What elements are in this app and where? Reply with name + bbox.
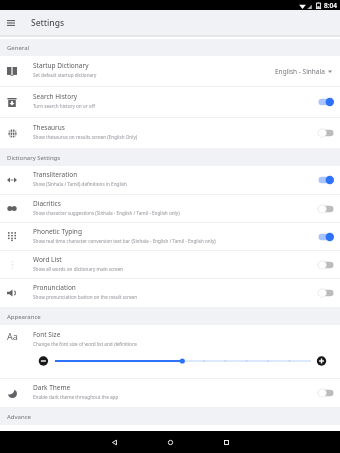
staticText: Advance <box>7 413 31 421</box>
staticText: Show thesaurus on results screen (Englis… <box>33 134 138 140</box>
button[interactable]: Thesaurus <box>0 118 340 148</box>
staticText: Word List <box>33 255 62 264</box>
button[interactable]: Switch off <box>316 258 340 272</box>
button[interactable]: Switch on <box>316 95 340 109</box>
staticText: Set default startup dictionary <box>33 72 97 78</box>
staticText: Dictionary Settings <box>7 154 61 162</box>
staticText: Change the font size of word list and de… <box>33 341 137 347</box>
staticText: Show all words on dictionary main screen <box>33 266 124 272</box>
staticText: Search History <box>33 92 78 101</box>
button[interactable]: Switch off <box>316 202 340 216</box>
button[interactable]: Diacritics <box>0 195 340 222</box>
button[interactable]: Open navigation drawer <box>0 10 22 35</box>
staticText: Thesaurus <box>33 123 65 132</box>
button[interactable]: Transliteration <box>0 166 340 194</box>
button[interactable]: Switch off <box>316 386 340 400</box>
button[interactable]: Recent apps <box>198 431 254 453</box>
staticText: Transliteration <box>33 170 78 179</box>
button[interactable]: Switch off <box>316 286 340 300</box>
button[interactable]: Pronunciation <box>0 279 340 307</box>
staticText: English - Sinhala <box>275 67 325 76</box>
button[interactable]: Aa <box>0 325 340 378</box>
button[interactable]: Dark Theme <box>0 379 340 407</box>
staticText: Enable dark theme throughout the app <box>33 394 119 400</box>
button[interactable]: Search History <box>0 87 340 117</box>
staticText: Show character suggestions (Sinhala - En… <box>33 210 180 216</box>
staticText: General <box>7 44 30 52</box>
staticText: Appearance <box>7 313 41 321</box>
staticText: Phonetic Typing <box>33 227 82 236</box>
button[interactable]: Word List <box>0 251 340 278</box>
staticText: Settings <box>31 17 65 29</box>
staticText: Font Size <box>33 330 61 339</box>
staticText: Diacritics <box>33 199 61 208</box>
staticText: Show real time character conversion text… <box>33 238 216 244</box>
staticText: Pronunciation <box>33 283 76 292</box>
staticText: Startup Dictionary <box>33 61 89 70</box>
staticText: Show (Sinhala / Tamil) definitions in En… <box>33 181 127 187</box>
button[interactable]: Switch on <box>316 173 340 187</box>
staticText: Show pronunciation button on the result … <box>33 294 138 300</box>
button[interactable]: Switch off <box>316 126 340 140</box>
button[interactable]: Switch on <box>316 230 340 244</box>
staticText: Dark Theme <box>33 383 71 392</box>
staticText: 8:04 <box>324 1 337 10</box>
button[interactable]: Startup Dictionary <box>0 56 340 86</box>
staticText: Turn search history on or off <box>33 103 95 109</box>
staticText: Aa <box>7 330 18 342</box>
button[interactable]: Back <box>86 431 142 453</box>
button[interactable]: Phonetic Typing <box>0 223 340 250</box>
button[interactable]: Home <box>142 431 198 453</box>
